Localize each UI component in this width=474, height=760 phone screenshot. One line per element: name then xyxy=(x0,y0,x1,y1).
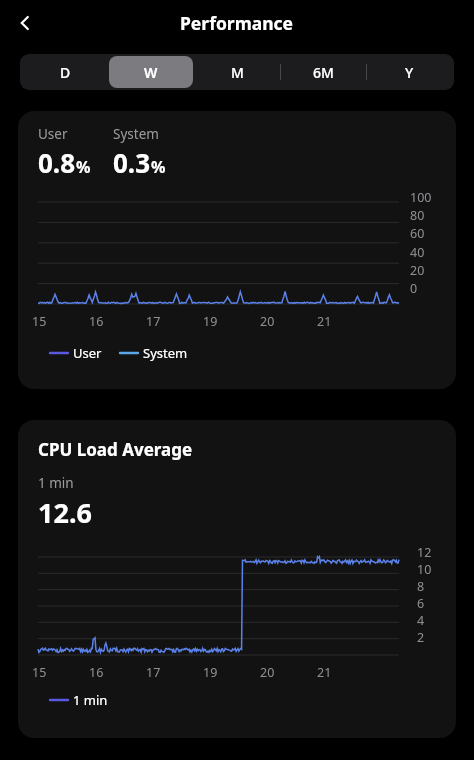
button[interactable]: 6M xyxy=(281,56,365,88)
staticText: System xyxy=(143,344,188,362)
staticText: 80 xyxy=(410,207,425,224)
staticText: 17 xyxy=(146,313,161,330)
staticText: W xyxy=(144,63,158,82)
staticText: 1 min xyxy=(73,691,108,709)
staticText: User xyxy=(73,344,102,362)
staticText: 20 xyxy=(260,313,275,330)
staticText: 17 xyxy=(146,664,161,681)
staticText: 0.8 xyxy=(38,145,76,180)
staticText: 0.3 xyxy=(113,145,151,180)
staticText: 100 xyxy=(410,189,432,206)
button[interactable]: D xyxy=(23,56,107,88)
staticText: Y xyxy=(405,63,414,82)
staticText: 21 xyxy=(317,313,332,330)
staticText: 12 xyxy=(417,544,432,561)
staticText: 16 xyxy=(89,313,104,330)
staticText: CPU Load Average xyxy=(38,438,193,461)
staticText: 15 xyxy=(32,664,47,681)
staticText: % xyxy=(151,156,166,178)
button[interactable]: M xyxy=(195,56,279,88)
staticText: 12.6 xyxy=(38,494,92,531)
staticText: 6M xyxy=(313,63,334,82)
staticText: 6 xyxy=(417,595,425,612)
staticText: 16 xyxy=(89,664,104,681)
staticText: 8 xyxy=(417,578,425,595)
staticText: D xyxy=(60,63,71,82)
button[interactable]: User xyxy=(18,111,456,389)
staticText: User xyxy=(38,125,68,143)
staticText: 19 xyxy=(203,664,218,681)
staticText: 20 xyxy=(260,664,275,681)
button[interactable]: W xyxy=(109,56,193,88)
staticText: System xyxy=(113,125,159,143)
staticText: 40 xyxy=(410,244,425,261)
staticText: 1 min xyxy=(38,474,74,492)
button[interactable]: CPU Load Average xyxy=(18,420,456,738)
staticText: M xyxy=(231,63,244,82)
button[interactable]: Y xyxy=(367,56,451,88)
button[interactable]: Back xyxy=(6,4,44,42)
staticText: 0 xyxy=(410,280,418,297)
staticText: % xyxy=(76,156,91,178)
staticText: Performance xyxy=(180,11,294,35)
staticText: 21 xyxy=(317,664,332,681)
staticText: 20 xyxy=(410,262,425,279)
staticText: 60 xyxy=(410,225,425,242)
staticText: 19 xyxy=(203,313,218,330)
staticText: 2 xyxy=(417,629,425,646)
staticText: 4 xyxy=(417,612,425,629)
staticText: 15 xyxy=(32,313,47,330)
staticText: 10 xyxy=(417,561,432,578)
